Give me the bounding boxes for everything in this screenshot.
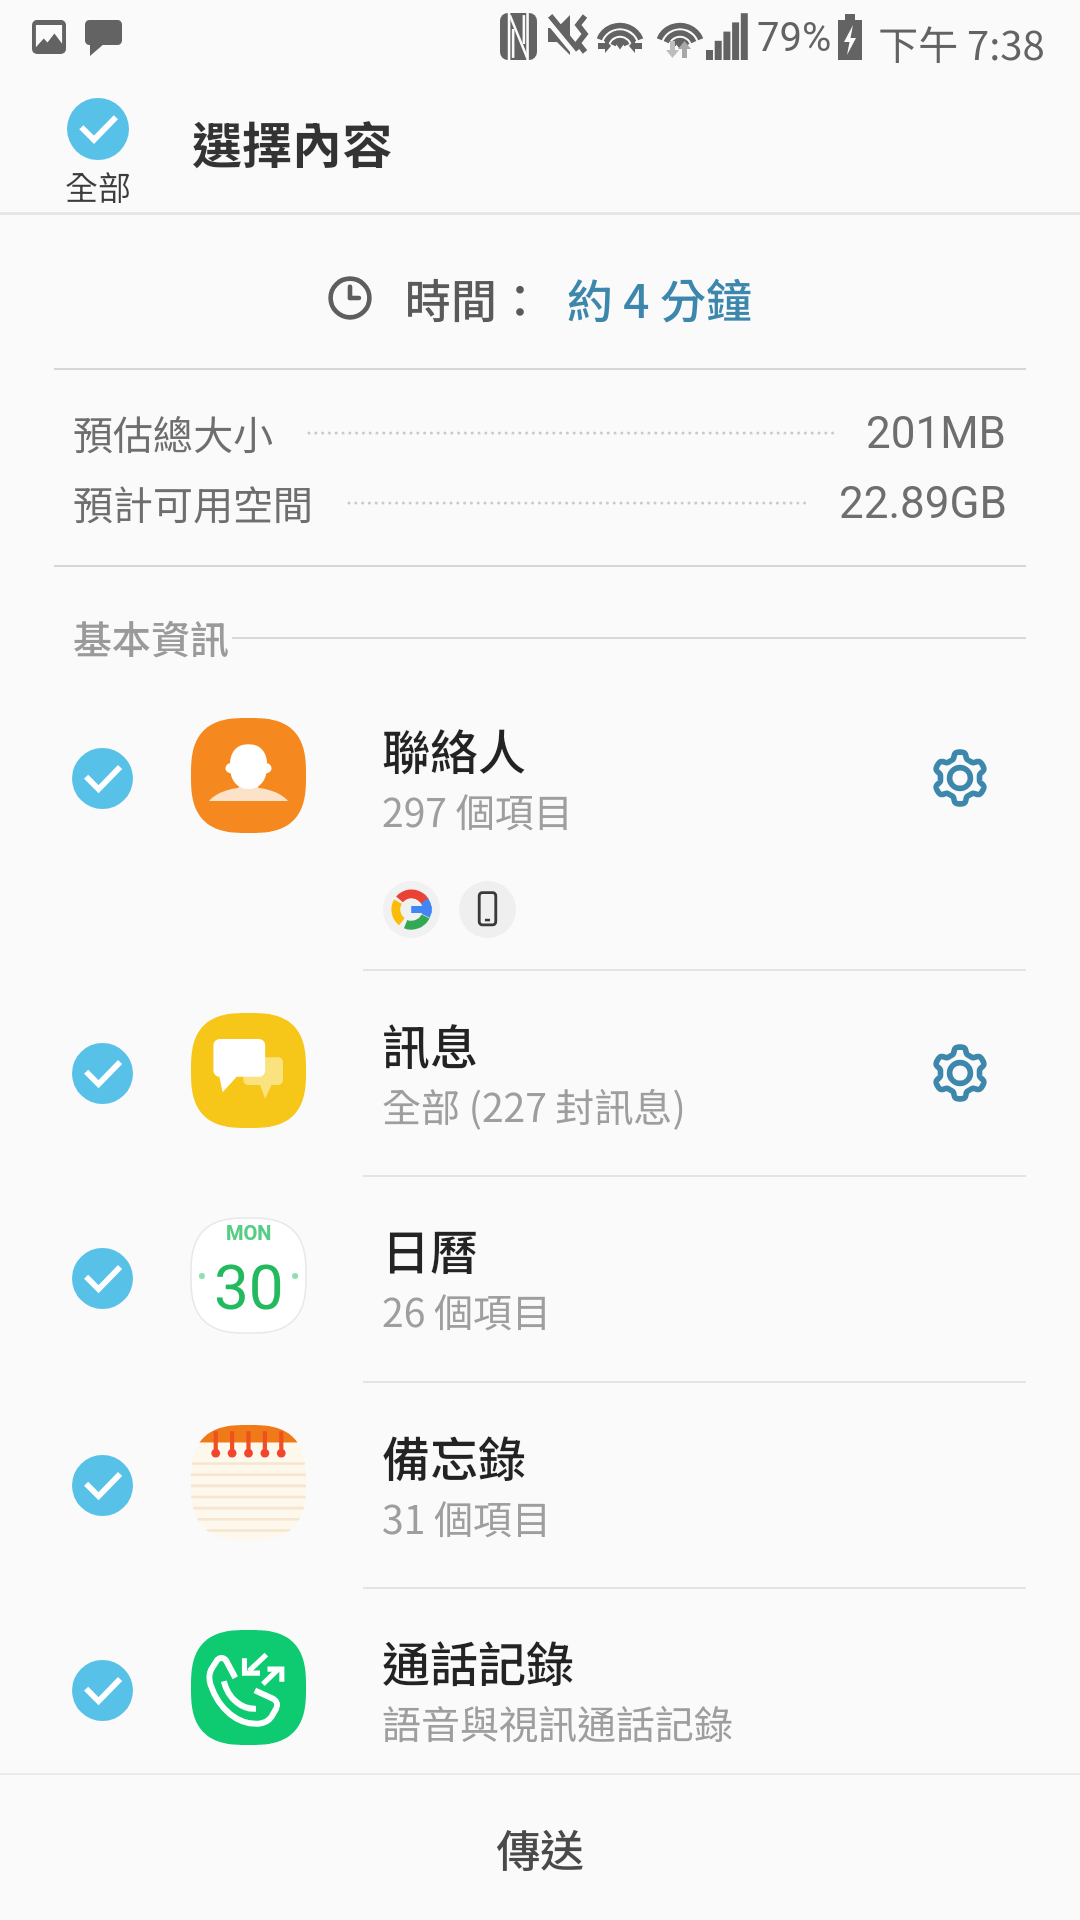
staticText: 201MB xyxy=(866,407,1007,459)
staticText: 30 xyxy=(214,1251,284,1324)
button[interactable]: 日曆 26 個項目 xyxy=(0,1176,1080,1382)
button[interactable]: 選取 xyxy=(37,1213,167,1343)
staticText: 語音與視訊通話記錄 xyxy=(382,1694,734,1750)
button[interactable]: 選取 xyxy=(37,1420,167,1550)
button[interactable]: 設定 xyxy=(895,713,1025,843)
staticText: 日曆 xyxy=(382,1214,479,1284)
staticText: 22.89GB xyxy=(839,477,1007,529)
staticText: 全部 (227 封訊息) xyxy=(382,1077,686,1133)
staticText: 下午 7:38 xyxy=(878,14,1045,72)
button[interactable]: 聯絡人 297 個項目 xyxy=(0,680,1080,969)
button[interactable]: 設定 xyxy=(895,1008,1025,1138)
staticText: 297 個項目 xyxy=(382,782,573,838)
staticText: 預估總大小 xyxy=(73,404,273,462)
staticText: 全部 xyxy=(65,162,131,210)
button[interactable]: 全部 xyxy=(65,98,131,210)
staticText: 訊息 xyxy=(382,1009,479,1079)
button[interactable]: 選取 xyxy=(37,1008,167,1138)
staticText: 聯絡人 xyxy=(382,714,527,784)
staticText: 79% xyxy=(757,14,832,61)
staticText: 通話記錄 xyxy=(382,1626,575,1696)
staticText: 時間： xyxy=(405,265,543,332)
staticText: 備忘錄 xyxy=(382,1421,527,1491)
staticText: 選擇內容 xyxy=(192,106,392,178)
staticText: 基本資訊 xyxy=(73,609,230,665)
button[interactable]: 備忘錄 31 個項目 xyxy=(0,1382,1080,1588)
button[interactable]: 訊息 全部 (227 封訊息) xyxy=(0,970,1080,1176)
staticText: MON xyxy=(226,1221,272,1244)
button[interactable]: 選取 xyxy=(37,1625,167,1755)
staticText: 31 個項目 xyxy=(382,1489,552,1545)
staticText: 約 4 分鐘 xyxy=(567,265,752,332)
staticText: 預計可用空間 xyxy=(73,474,313,532)
staticText: 26 個項目 xyxy=(382,1282,552,1338)
button[interactable]: 傳送 xyxy=(0,1775,1080,1920)
staticText: 傳送 xyxy=(496,1816,584,1880)
button[interactable]: 選取 xyxy=(37,713,167,843)
button[interactable]: 通話記錄 語音與視訊通話記錄 xyxy=(0,1588,1080,1774)
